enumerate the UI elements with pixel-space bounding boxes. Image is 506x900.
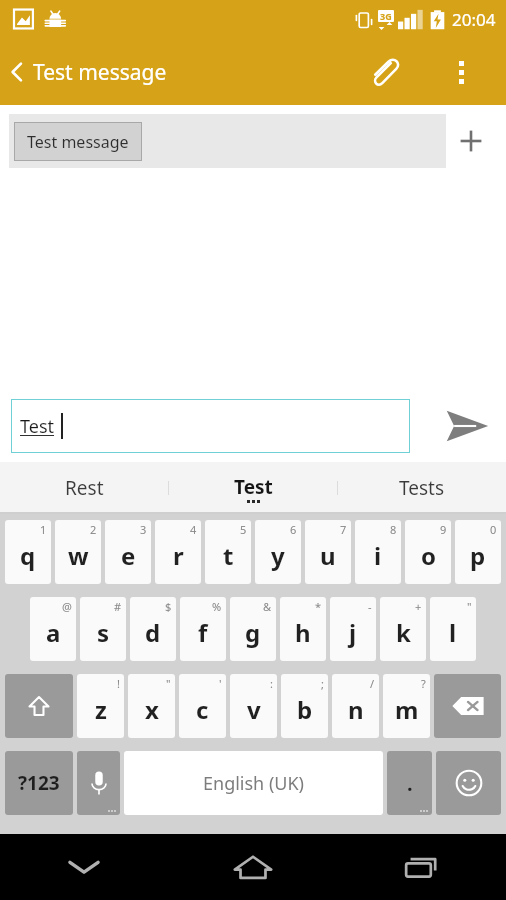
staticText: Tests (399, 475, 445, 501)
button[interactable]: x (128, 674, 175, 738)
button[interactable]: e (105, 520, 151, 584)
staticText: " (166, 676, 171, 691)
staticText: " (467, 599, 472, 614)
staticText: b (297, 693, 313, 726)
staticText: Rest (65, 475, 104, 501)
staticText: @ (62, 599, 72, 614)
staticText: h (295, 616, 311, 649)
staticText: 5 (240, 522, 247, 537)
button[interactable]: . (387, 751, 432, 815)
staticText: / (370, 676, 375, 691)
button[interactable]: Test message (0, 57, 175, 87)
button[interactable]: w (55, 520, 101, 584)
button[interactable]: Home (168, 834, 337, 900)
button[interactable]: j (330, 597, 376, 661)
staticText: y (271, 539, 285, 572)
staticText: u (320, 539, 336, 572)
staticText: & (263, 599, 272, 614)
staticText: Test message (33, 58, 167, 87)
staticText: 4 (190, 522, 197, 537)
staticText: 6 (290, 522, 297, 537)
button[interactable]: Tests (338, 462, 506, 514)
button[interactable]: f (180, 597, 226, 661)
button[interactable]: Attach (360, 48, 408, 96)
staticText: s (97, 616, 110, 649)
staticText: 1 (40, 522, 47, 537)
staticText: ? (421, 676, 426, 691)
button[interactable]: t (205, 520, 251, 584)
staticText: 3G (380, 10, 392, 22)
button[interactable]: Rest (0, 462, 168, 514)
button[interactable]: Test message (9, 114, 446, 168)
button[interactable]: b (281, 674, 328, 738)
staticText: v (247, 693, 261, 726)
button[interactable]: m (383, 674, 430, 738)
staticText: e (121, 539, 136, 572)
staticText: ?123 (18, 770, 60, 796)
button[interactable]: d (130, 597, 176, 661)
button[interactable]: q (5, 520, 51, 584)
staticText: 7 (340, 522, 347, 537)
staticText: j (349, 616, 357, 649)
staticText: g (245, 616, 261, 649)
staticText: % (212, 599, 222, 614)
button[interactable]: Hide keyboard (0, 834, 168, 900)
button[interactable]: o (405, 520, 451, 584)
staticText: f (198, 616, 208, 649)
button[interactable]: l (430, 597, 476, 661)
staticText: + (415, 599, 422, 614)
button[interactable]: p (455, 520, 501, 584)
button[interactable]: a (30, 597, 76, 661)
button[interactable]: z (77, 674, 124, 738)
staticText: i (374, 539, 382, 572)
staticText: r (173, 539, 184, 572)
button[interactable]: r (155, 520, 201, 584)
button[interactable]: c (179, 674, 226, 738)
button[interactable]: ?123 (5, 751, 73, 815)
button[interactable]: g (230, 597, 276, 661)
button[interactable]: Add recipient (448, 118, 494, 164)
staticText: 9 (440, 522, 447, 537)
button[interactable]: h (280, 597, 326, 661)
staticText: $ (165, 599, 172, 614)
button[interactable]: s (80, 597, 126, 661)
staticText: w (68, 539, 89, 572)
staticText: English (UK) (203, 771, 305, 796)
button[interactable]: u (305, 520, 351, 584)
staticText: - (368, 599, 372, 614)
staticText: ' (219, 676, 222, 691)
staticText: x (145, 693, 159, 726)
button[interactable]: More options (438, 49, 484, 95)
staticText: 3 (140, 522, 147, 537)
staticText: 0 (490, 522, 497, 537)
staticText: ; (321, 676, 324, 691)
staticText: t (223, 539, 234, 572)
staticText: k (396, 616, 411, 649)
button[interactable]: English (UK) (124, 751, 383, 815)
button[interactable]: k (380, 597, 426, 661)
staticText: q (20, 539, 36, 572)
button[interactable]: Test (11, 399, 410, 453)
button[interactable]: Recent apps (337, 834, 506, 900)
button[interactable]: y (255, 520, 301, 584)
button[interactable]: i (355, 520, 401, 584)
button[interactable]: Backspace (434, 674, 501, 738)
button[interactable]: Send (436, 395, 498, 457)
button[interactable]: Shift (5, 674, 73, 738)
staticText: n (348, 693, 364, 726)
button[interactable]: Emoji (436, 751, 501, 815)
staticText: . (407, 770, 413, 797)
button[interactable]: v (230, 674, 277, 738)
staticText: z (95, 693, 107, 726)
button[interactable]: Voice input (77, 751, 120, 815)
staticText: * (315, 599, 322, 614)
staticText: # (114, 599, 122, 614)
staticText: ! (117, 676, 120, 691)
staticText: Test (234, 474, 273, 500)
staticText: c (196, 693, 209, 726)
button[interactable]: n (332, 674, 379, 738)
button[interactable]: Test (169, 462, 337, 514)
staticText: Test message (27, 131, 129, 153)
staticText: 20:04 (452, 8, 496, 31)
staticText: Test (20, 414, 55, 439)
